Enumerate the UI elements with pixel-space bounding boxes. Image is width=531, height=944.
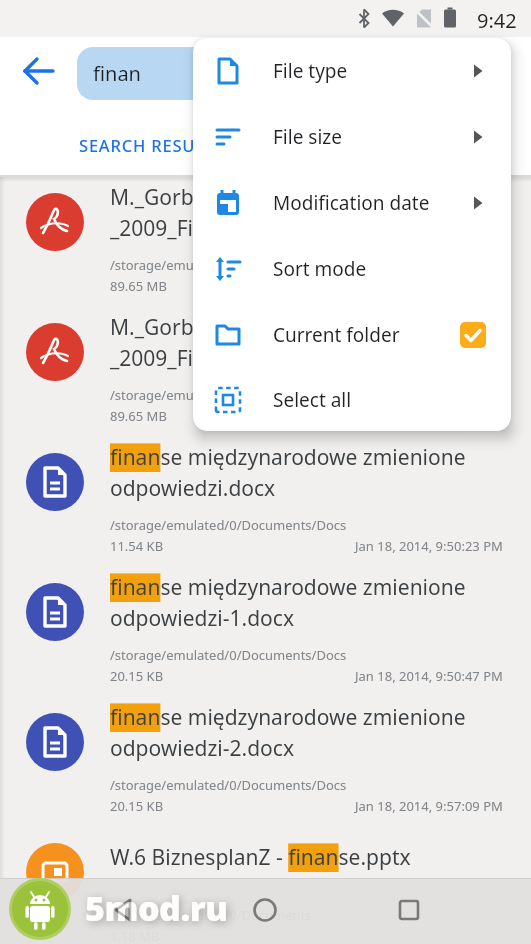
button[interactable] — [106, 892, 142, 928]
button[interactable]: File type — [193, 38, 511, 104]
button[interactable]: finanse międzynarodowe zmienione — [0, 437, 531, 567]
staticText: odpowiedzi-1.docx — [110, 604, 295, 633]
staticText: /storage/emulated/0/Documents/Docs — [110, 516, 347, 534]
staticText: 5mod.ru — [85, 885, 228, 931]
staticText: Jan 18, 2014, 9:57:09 PM — [355, 797, 503, 815]
staticText: finan — [93, 60, 141, 87]
staticText: M._Gorbaczewski — [110, 313, 280, 342]
button[interactable]: Modification date — [193, 170, 511, 236]
button[interactable]: Select all — [193, 368, 511, 431]
staticText: 11.54 KB — [110, 537, 164, 555]
button[interactable] — [247, 892, 283, 928]
staticText: _2009_Finanse.pdf — [110, 214, 292, 243]
button[interactable]: M._Gorbaczewski — [0, 307, 531, 437]
staticText: finanse międzynarodowe zmienione — [110, 573, 466, 602]
button[interactable] — [77, 47, 377, 100]
staticText: Sort mode — [273, 256, 367, 282]
staticText: M._Gorbaczewski — [110, 183, 280, 212]
button[interactable] — [391, 892, 427, 928]
button[interactable]: W.6 BiznesplanZ - finanse.pptx — [0, 827, 531, 944]
button[interactable]: finanse międzynarodowe zmienione — [0, 567, 531, 697]
button[interactable]: finanse międzynarodowe zmienione — [0, 697, 531, 827]
staticText: 20.15 KB — [110, 797, 164, 815]
button[interactable] — [18, 50, 60, 92]
staticText: W.6 BiznesplanZ - finanse.pptx — [110, 843, 411, 872]
staticText: finanse międzynarodowe zmienione — [110, 443, 466, 472]
staticText: /storage/emulated/0/Documents/Docs — [110, 646, 347, 664]
button[interactable]: M._Gorbaczewski — [0, 177, 531, 307]
staticText: Jan 18, 2014, 9:50:23 PM — [355, 537, 503, 555]
staticText: /storage/emulated/0/Download — [110, 386, 304, 404]
button[interactable]: SEARCH RESULTS — [60, 120, 300, 170]
staticText: 89.65 MB — [110, 277, 167, 295]
staticText: SEARCH RESULTS — [79, 134, 225, 156]
staticText: Modification date — [273, 190, 430, 216]
staticText: Jan 18, 2014, 9:50:47 PM — [355, 667, 503, 685]
staticText: File type — [273, 58, 348, 84]
staticText: odpowiedzi-2.docx — [110, 734, 295, 763]
button[interactable]: Current folder — [193, 302, 511, 368]
staticText: Current folder — [273, 322, 400, 348]
staticText: /storage/emulated/0/Download — [110, 256, 304, 274]
button[interactable]: Sort mode — [193, 236, 511, 302]
staticText: finanse międzynarodowe zmienione — [110, 703, 466, 732]
staticText: 89.65 MB — [110, 407, 167, 425]
staticText: odpowiedzi.docx — [110, 474, 276, 503]
staticText: Select all — [273, 387, 352, 413]
staticText: 9:42 — [477, 7, 517, 34]
staticText: 20.15 KB — [110, 667, 164, 685]
button[interactable]: File size — [193, 104, 511, 170]
staticText: /storage/emulated/0/Documents/Docs — [110, 776, 347, 794]
staticText: File size — [273, 124, 342, 150]
staticText: _2009_Finanse.pdf — [110, 344, 292, 373]
staticText: /storage/emulated/0/Documents — [110, 906, 312, 924]
